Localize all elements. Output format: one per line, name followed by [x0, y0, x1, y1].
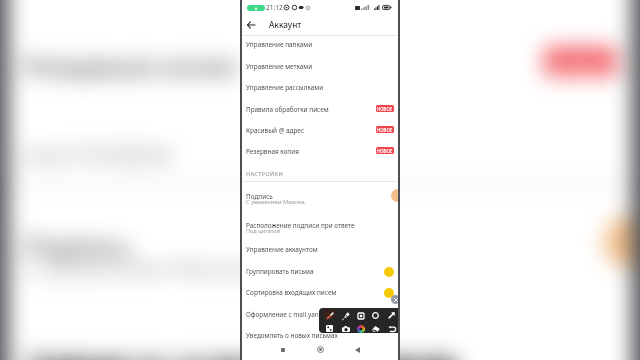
staticText: С уважением Максим, — [246, 198, 307, 206]
staticText: Красивый @ адрес — [246, 126, 305, 135]
staticText: 21:12 — [266, 3, 283, 12]
staticText: Группировать письма — [246, 267, 314, 276]
button[interactable]: Подпись — [0, 200, 640, 316]
staticText: НОВОЕ — [548, 52, 612, 76]
staticText: Оформление с mail.yandex — [246, 310, 330, 319]
button[interactable]: Подпись — [240, 185, 400, 214]
staticText: Управление метками — [246, 62, 313, 71]
button[interactable]: Close — [391, 295, 400, 304]
button[interactable]: Сортировка входящих писем — [240, 282, 400, 303]
button[interactable]: Резервная копия — [240, 141, 400, 162]
staticText: Расположение подписи при ответе — [246, 221, 355, 230]
button[interactable]: Красивый @ адрес — [0, 0, 640, 24]
staticText: НАСТРОЙКИ — [246, 170, 284, 178]
button[interactable]: Красивый @ адрес — [240, 120, 400, 141]
button[interactable]: Расположение подписи при ответе — [0, 316, 640, 360]
button[interactable]: Правила обработки писем — [240, 99, 400, 120]
button[interactable]: Back — [348, 339, 366, 360]
button[interactable]: Уведомлять о новых письмах — [240, 325, 400, 346]
button[interactable]: Undo — [386, 323, 397, 333]
button[interactable]: Back — [244, 18, 257, 31]
button[interactable]: Mosaic — [324, 323, 335, 333]
staticText: С уважением Максим, — [24, 252, 268, 284]
staticText: Уведомлять о новых письмах — [246, 331, 338, 340]
staticText: Сортировка входящих писем — [246, 288, 337, 297]
button[interactable]: Home — [311, 339, 329, 360]
staticText: НОВОЕ — [377, 106, 393, 112]
button[interactable]: Arrow — [386, 310, 397, 321]
button[interactable]: Eraser — [370, 323, 381, 333]
button[interactable]: Резервная копия — [0, 24, 640, 108]
staticText: Аккаунт — [269, 19, 302, 30]
button[interactable]: Расположение подписи при ответе — [240, 214, 400, 243]
button[interactable]: Recents — [274, 339, 292, 360]
button[interactable]: Pen — [324, 310, 335, 321]
button[interactable]: Marker — [340, 310, 351, 321]
button[interactable]: Colour — [355, 323, 366, 333]
staticText: Правила обработки писем — [246, 105, 329, 114]
staticText: Подпись — [246, 192, 273, 201]
button[interactable]: Управление аккаунтом — [240, 239, 400, 260]
staticText: НОВОЕ — [377, 148, 393, 154]
button[interactable]: Управление метками — [240, 56, 400, 77]
button[interactable]: Управление рассылками — [240, 77, 400, 98]
button[interactable]: Rectangle — [355, 310, 366, 321]
staticText: Управление рассылками — [246, 83, 324, 92]
button[interactable]: Управление папками — [240, 34, 400, 55]
staticText: НАСТРОЙКИ — [24, 140, 176, 172]
staticText: Подпись — [24, 228, 132, 264]
staticText: Управление папками — [246, 40, 313, 49]
button[interactable]: Оформление с mail.yandex — [240, 304, 400, 325]
button[interactable]: Circle — [370, 310, 381, 321]
staticText: НОВОЕ — [377, 127, 393, 133]
staticText: Под цитатой — [246, 227, 281, 235]
staticText: Резервная копия — [24, 48, 236, 84]
staticText: Резервная копия — [246, 147, 299, 156]
button[interactable]: Screenshot — [340, 323, 351, 333]
staticText: Управление аккаунтом — [246, 245, 318, 254]
button[interactable]: Группировать письма — [240, 261, 400, 282]
staticText: Расположение подписи при ответе — [24, 344, 460, 360]
